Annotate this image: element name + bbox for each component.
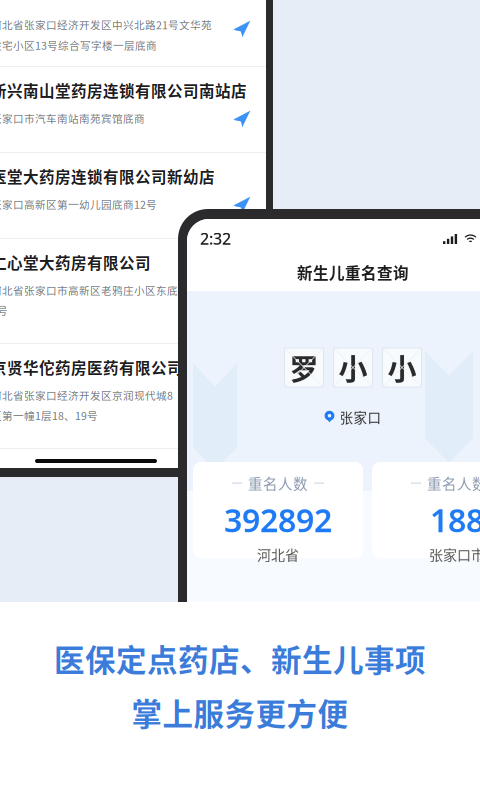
staticText: 医保定点药店、新生儿事项 xyxy=(54,636,426,680)
staticText: 新兴南山堂药房连锁有限公司南站店 xyxy=(0,79,247,101)
staticText: 张家口市汽车南站南苑宾馆底商 xyxy=(0,110,145,126)
staticText: 区第一幢1层18、19号 xyxy=(0,408,98,423)
staticText: 住宅小区13号综合写字楼一层底商 xyxy=(0,37,157,53)
staticText: 188 xyxy=(430,499,480,541)
staticText: 张家口高新区第一幼儿园底商12号 xyxy=(0,196,157,212)
staticText: 小 xyxy=(338,346,367,388)
staticText: 河北省张家口市高新区老鸦庄小区东底 xyxy=(0,282,178,298)
staticText: 河北省张家口经济开发区中兴北路21号文华苑 xyxy=(0,17,212,32)
staticText: 小 xyxy=(387,346,416,388)
staticText: 重名人数 xyxy=(248,473,308,494)
staticText: 医堂大药房连锁有限公司新幼店 xyxy=(0,165,215,187)
staticText: 掌上服务更方便 xyxy=(131,690,348,734)
staticText: 张家口 xyxy=(339,407,381,426)
staticText: 仁心堂大药房有限公司 xyxy=(0,251,151,273)
staticText: 新生儿重名查询 xyxy=(297,261,409,283)
staticText: 京贤华佗药房医药有限公司 xyxy=(0,356,183,378)
staticText: 罗 xyxy=(289,346,318,388)
staticText: 6号 xyxy=(0,303,8,318)
staticText: 张家口市 xyxy=(429,544,480,564)
staticText: 2:32 xyxy=(200,228,231,249)
staticText: 河北省 xyxy=(257,544,299,564)
staticText: 重名人数 xyxy=(427,473,480,494)
staticText: 河北省张家口经济开发区京润现代城8 xyxy=(0,387,173,403)
staticText: 392892 xyxy=(224,499,332,541)
